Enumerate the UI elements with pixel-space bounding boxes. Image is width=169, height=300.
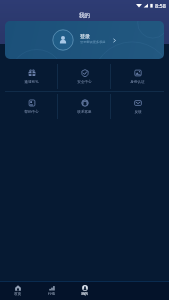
- button[interactable]: 邀请有礼: [5, 62, 58, 91]
- button[interactable]: 安全中心: [58, 62, 111, 91]
- button[interactable]: 联系客服: [58, 92, 111, 121]
- button[interactable]: 首页: [0, 282, 35, 300]
- button[interactable]: 我的: [68, 282, 101, 300]
- staticText: 身份认证: [130, 80, 145, 85]
- staticText: 安全中心: [77, 80, 92, 85]
- staticText: 登录解锁更多权益: [80, 40, 106, 44]
- staticText: 帮助中心: [24, 110, 39, 115]
- staticText: 8:58: [155, 2, 166, 9]
- staticText: 登录: [80, 33, 90, 39]
- button[interactable]: 登录: [5, 21, 164, 59]
- staticText: 我的: [81, 292, 89, 297]
- staticText: 行情: [48, 292, 56, 297]
- button[interactable]: 身份认证: [111, 62, 164, 91]
- button[interactable]: 行情: [35, 282, 68, 300]
- staticText: 联系客服: [77, 110, 92, 115]
- staticText: 我的: [79, 12, 90, 19]
- other: Open profile: [112, 38, 117, 43]
- button[interactable]: 反馈: [111, 92, 164, 121]
- staticText: 首页: [14, 292, 22, 297]
- staticText: 反馈: [134, 110, 142, 115]
- button[interactable]: 帮助中心: [5, 92, 58, 121]
- staticText: 邀请有礼: [24, 80, 39, 85]
